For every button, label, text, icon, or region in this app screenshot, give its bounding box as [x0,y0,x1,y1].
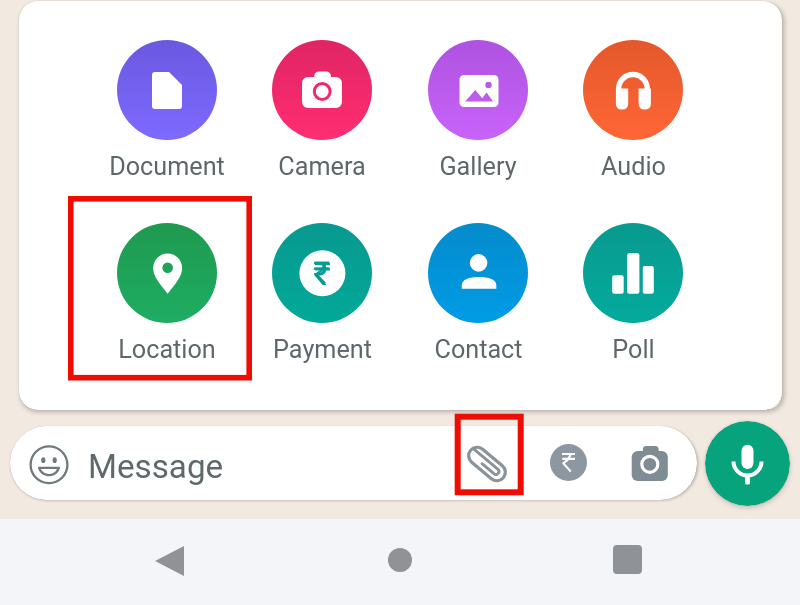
button[interactable]: Poll [556,223,710,368]
button[interactable]: Attach [465,442,509,486]
button[interactable]: Recents [598,530,658,590]
staticText: Camera [278,152,366,182]
staticText: Gallery [439,152,517,182]
staticText: Audio [601,152,666,182]
button[interactable]: Camera [628,442,672,486]
button[interactable]: Document [90,40,244,185]
button[interactable]: Location [90,223,244,368]
staticText: Poll [612,335,655,365]
button[interactable]: Audio [556,40,710,185]
button[interactable]: Gallery [401,40,555,185]
staticText: Contact [434,335,523,365]
staticText: ₹ [313,254,331,293]
button[interactable]: Camera [245,40,399,185]
button[interactable]: Home [370,530,430,590]
staticText: Payment [273,335,372,365]
button[interactable]: Emoji [27,443,71,487]
button[interactable]: Contact [401,223,555,368]
button[interactable]: Voice message [705,421,790,506]
staticText: Location [118,335,216,365]
button[interactable]: ₹ [245,223,399,368]
staticText: Document [109,152,225,182]
button[interactable]: Payment [550,444,587,481]
button[interactable]: Message input field [10,426,697,500]
button[interactable]: Back [140,530,200,590]
staticText: Message [88,447,224,486]
